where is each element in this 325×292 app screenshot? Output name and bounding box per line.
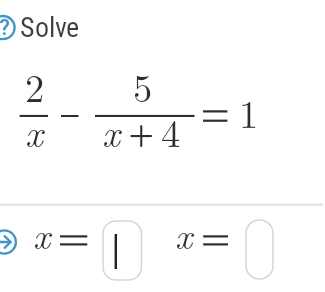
button[interactable] — [246, 220, 273, 279]
button[interactable] — [103, 221, 142, 280]
button[interactable] — [0, 229, 18, 256]
button[interactable] — [0, 15, 17, 41]
